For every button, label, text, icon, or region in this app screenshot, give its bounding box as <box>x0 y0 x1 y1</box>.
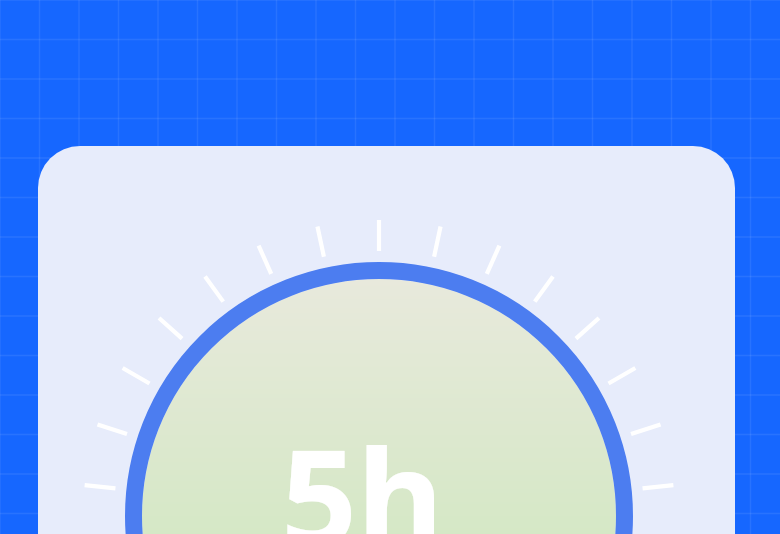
staticText: 5h <box>281 404 444 534</box>
button[interactable]: Sunlight exposure card, 5 hours <box>0 0 780 534</box>
